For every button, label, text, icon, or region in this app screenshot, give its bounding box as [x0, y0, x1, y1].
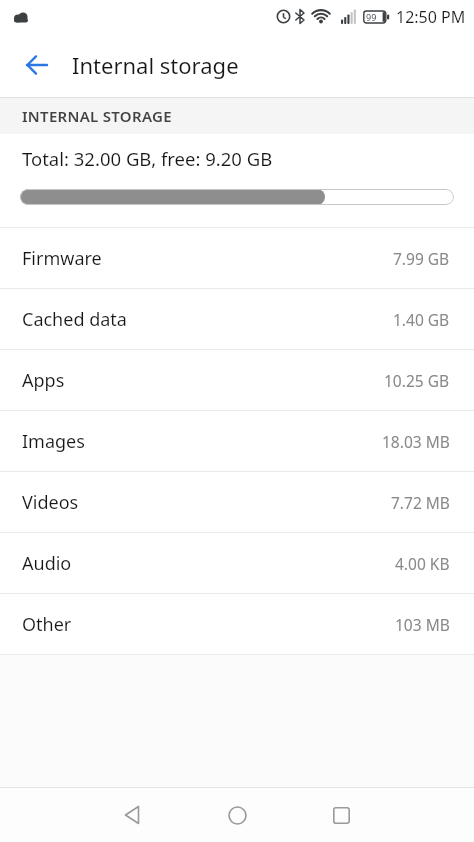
staticText: Cached data	[22, 307, 393, 332]
staticText: 103 MB	[395, 614, 450, 635]
staticText: 10.25 GB	[384, 370, 450, 391]
staticText: 7.99 GB	[393, 248, 450, 269]
button[interactable]: Other	[0, 594, 474, 654]
staticText: Internal storage	[72, 50, 239, 80]
staticText: 1.40 GB	[393, 309, 450, 330]
button[interactable]	[317, 791, 365, 839]
staticText: 4.00 KB	[395, 553, 450, 574]
button[interactable]: Videos	[0, 472, 474, 532]
staticText: 7.72 MB	[391, 492, 450, 513]
button[interactable]	[109, 791, 157, 839]
staticText: Videos	[22, 490, 391, 515]
button[interactable]	[213, 791, 261, 839]
staticText: Total: 32.00 GB, free: 9.20 GB	[22, 146, 273, 171]
button[interactable]: Cached data	[0, 289, 474, 349]
staticText: 99	[366, 11, 377, 23]
button[interactable]: Apps	[0, 350, 474, 410]
button[interactable]: Images	[0, 411, 474, 471]
staticText: 12:50 PM	[396, 6, 466, 28]
staticText: Other	[22, 612, 395, 637]
staticText: 18.03 MB	[382, 431, 450, 452]
staticText: Images	[22, 429, 382, 454]
staticText: Apps	[22, 368, 384, 393]
staticText: Audio	[22, 551, 395, 576]
staticText: Firmware	[22, 246, 393, 271]
button[interactable]	[12, 40, 62, 90]
button[interactable]: Firmware	[0, 228, 474, 288]
button[interactable]: Audio	[0, 533, 474, 593]
staticText: INTERNAL STORAGE	[22, 106, 172, 126]
